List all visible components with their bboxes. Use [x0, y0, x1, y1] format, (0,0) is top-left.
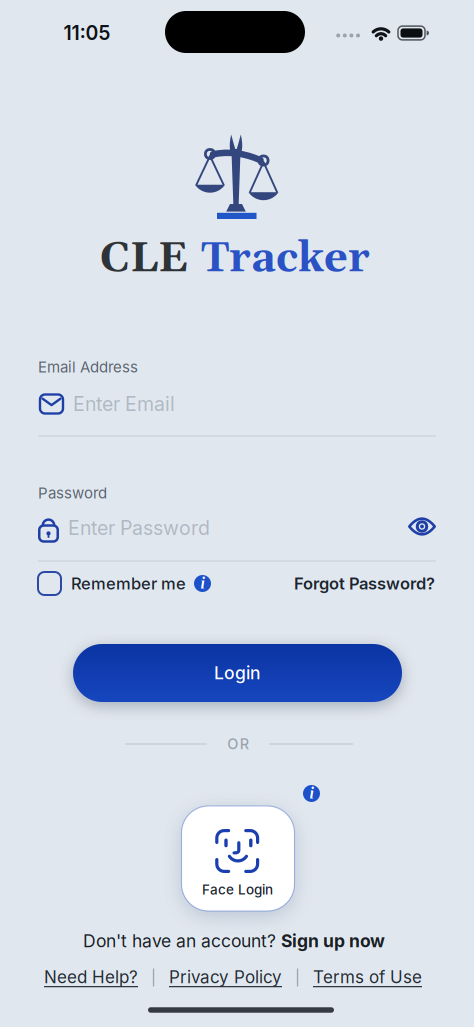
- staticText: i: [200, 574, 204, 592]
- staticText: CLE: [100, 233, 188, 285]
- staticText: OR: [227, 735, 249, 753]
- staticText: Remember me: [71, 573, 186, 593]
- staticText: Need Help?: [44, 967, 138, 987]
- staticText: |: [295, 968, 300, 986]
- staticText: i: [309, 784, 313, 802]
- staticText: Login: [214, 662, 261, 684]
- staticText: Password: [38, 484, 107, 502]
- staticText: Enter Email: [73, 392, 175, 416]
- staticText: Forgot Password?: [294, 573, 435, 593]
- staticText: Face Login: [202, 881, 273, 898]
- staticText: 11:05: [63, 21, 110, 45]
- staticText: Terms of Use: [313, 967, 422, 987]
- staticText: Enter Password: [68, 516, 210, 540]
- staticText: Don't have an account? Sign up now: [83, 931, 385, 951]
- staticText: Privacy Policy: [169, 967, 282, 987]
- staticText: |: [151, 968, 156, 986]
- staticText: Tracker: [201, 233, 370, 285]
- staticText: Email Address: [38, 358, 138, 376]
